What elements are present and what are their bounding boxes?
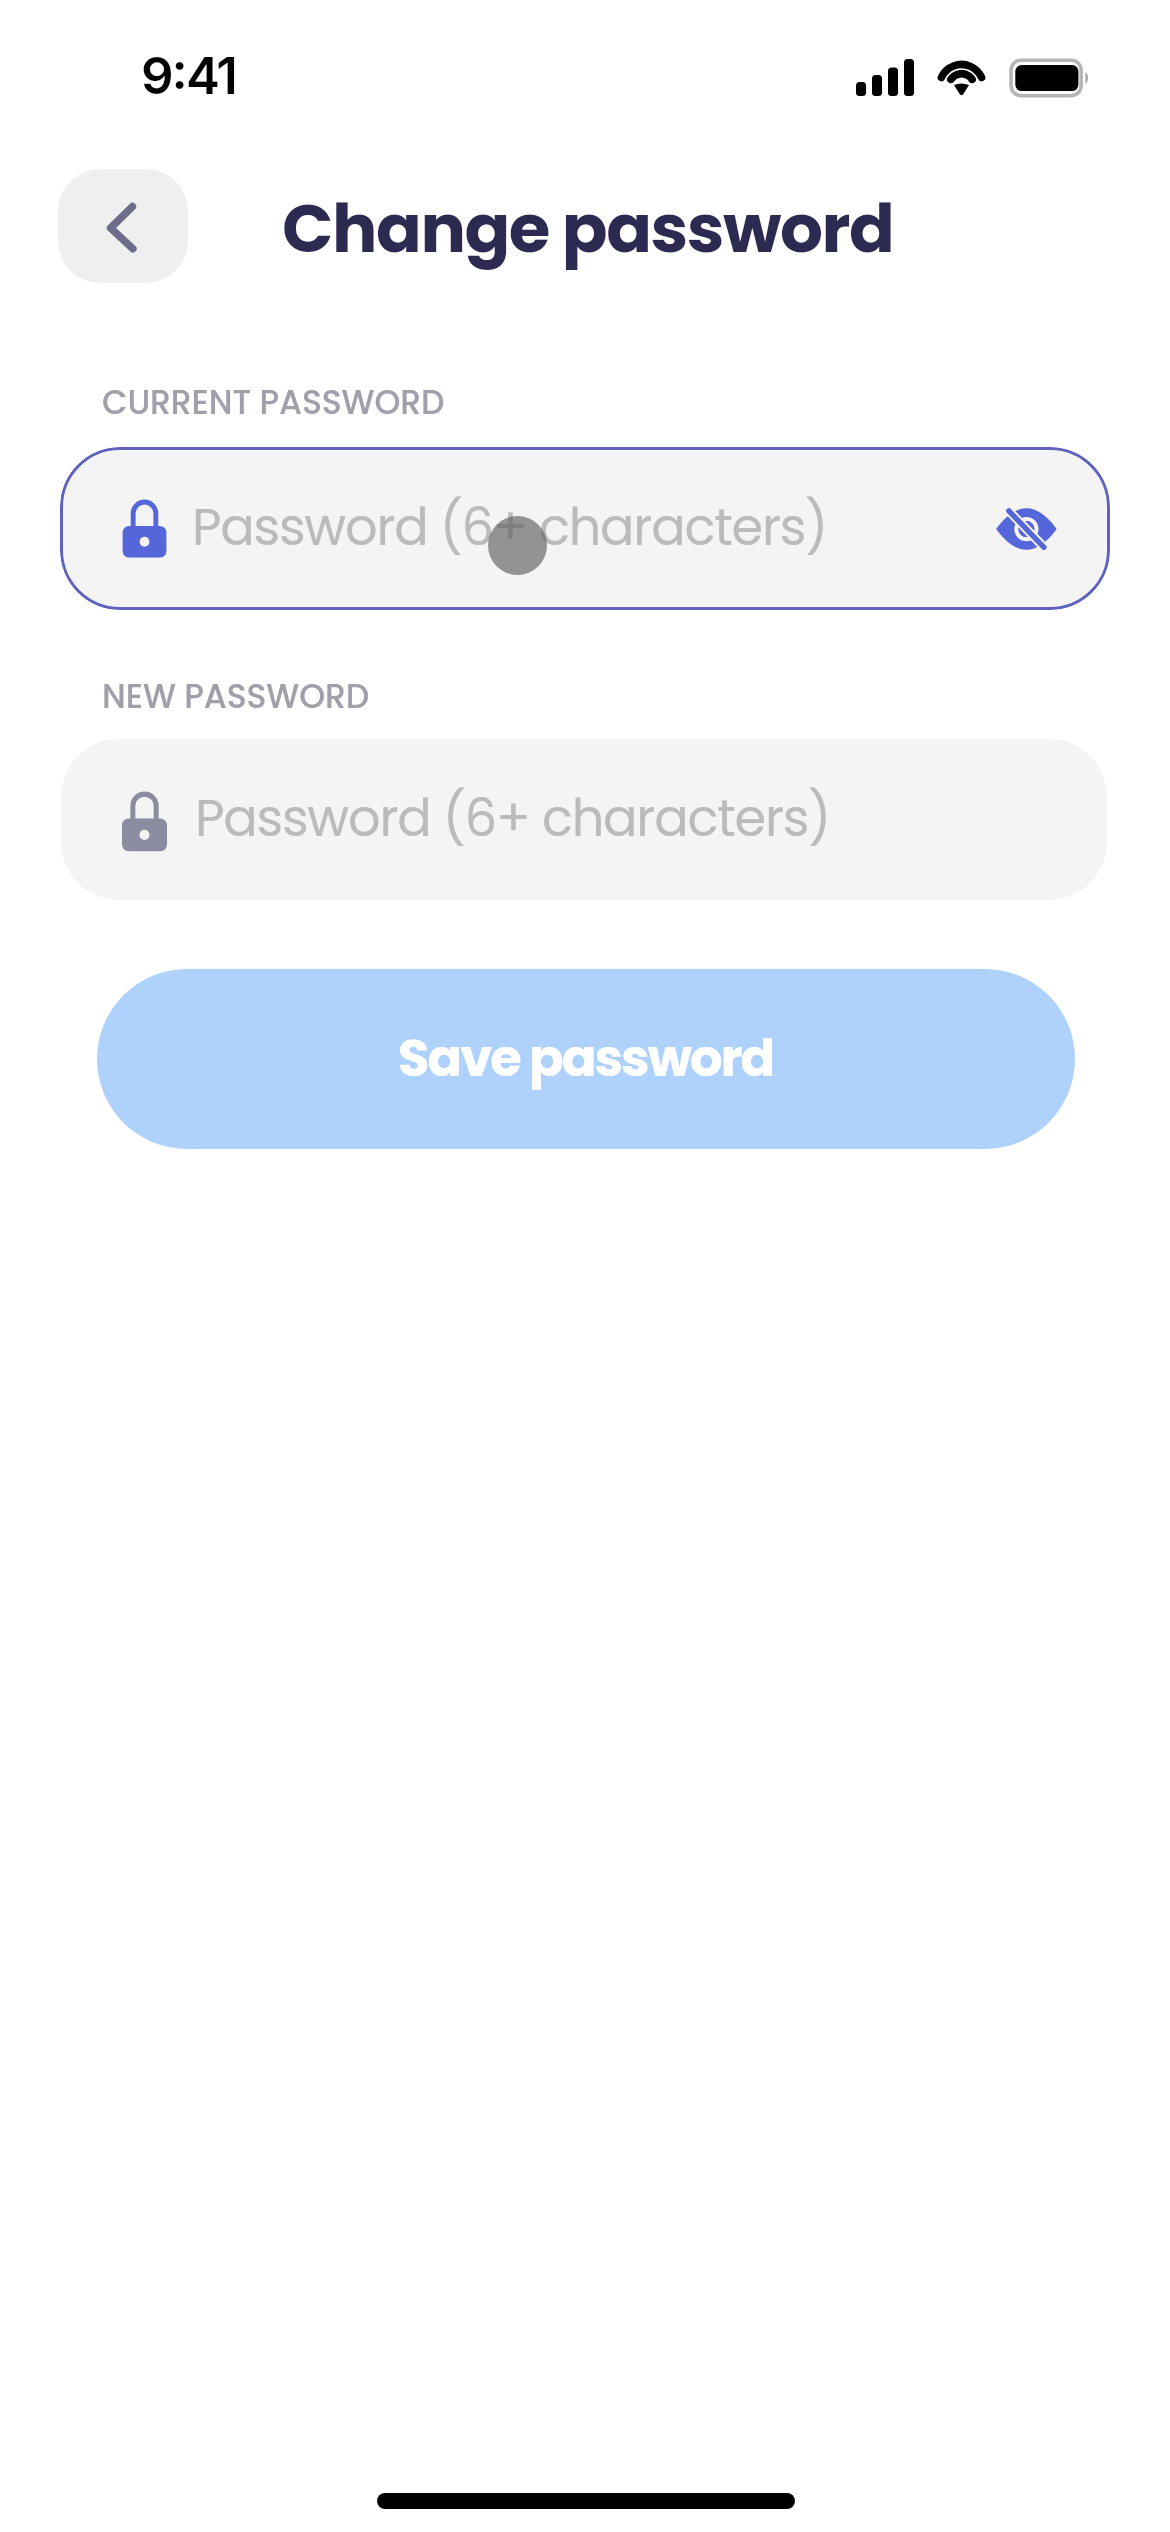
button[interactable]: Password (6+ characters) [61, 739, 1107, 900]
button[interactable]: Save password [97, 969, 1075, 1149]
staticText: Change password [282, 181, 894, 276]
button[interactable]: Password (6+ characters) [60, 447, 1110, 610]
staticText: 9:41 [141, 45, 236, 107]
staticText: Save password [398, 1022, 774, 1093]
staticText: Password (6+ characters) [192, 491, 828, 562]
staticText: NEW PASSWORD [102, 673, 370, 719]
staticText: Password (6+ characters) [195, 782, 831, 853]
staticText: CURRENT PASSWORD [102, 379, 445, 425]
button[interactable]: Back [58, 169, 188, 283]
button[interactable]: Hide password [981, 484, 1072, 574]
